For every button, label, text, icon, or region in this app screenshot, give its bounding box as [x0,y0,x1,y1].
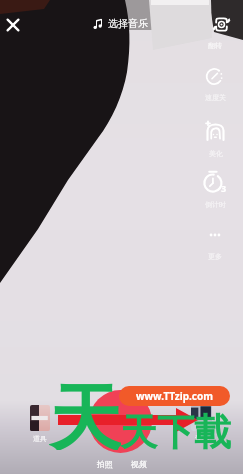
button[interactable]: 美化 [201,118,230,158]
button[interactable]: 更多 [206,229,224,261]
staticText: 选择音乐 [108,17,148,30]
button[interactable]: Close [0,12,26,38]
button[interactable]: 道具 [30,405,50,443]
staticText: 更多 [208,252,222,261]
staticText: 速度关 [205,93,226,102]
staticText: 天 [49,374,121,450]
button[interactable]: 视频 [122,459,156,469]
button[interactable]: 选择音乐 [93,16,148,31]
staticText: 道具 [33,434,47,443]
button[interactable]: 3 [200,168,230,209]
staticText: 美化 [209,149,223,158]
button[interactable]: 速度关 [203,66,228,102]
button[interactable]: 拍照 [88,459,122,469]
button[interactable]: Flip camera [208,11,234,37]
staticText: www.TTzip.com [136,389,213,403]
staticText: 翻转 [208,41,222,50]
staticText: 3 [221,182,227,194]
staticText: 倒计时 [205,200,226,209]
staticText: 滤镜 [195,434,209,443]
staticText: 视频 [131,459,147,469]
button[interactable]: Shutter [89,390,152,453]
button[interactable]: 滤镜 [191,405,212,443]
staticText: 天下載 [120,409,231,455]
staticText: 拍照 [97,459,113,469]
